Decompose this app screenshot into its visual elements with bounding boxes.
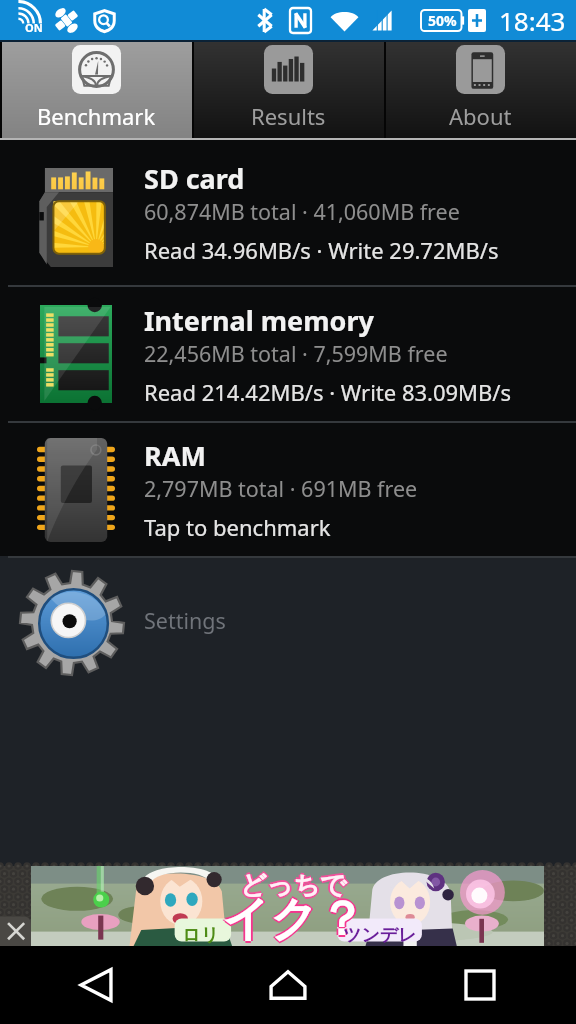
button[interactable]: Internal memory: [0, 287, 576, 421]
staticText: ツンデレ: [343, 924, 417, 947]
staticText: どっちで: [240, 869, 347, 902]
staticText: SD card: [144, 160, 245, 197]
staticText: Settings: [144, 606, 226, 635]
button[interactable]: RAM: [0, 423, 576, 556]
button[interactable]: Settings: [0, 558, 576, 688]
staticText: 50%: [428, 11, 457, 30]
button[interactable]: Results: [192, 42, 384, 140]
button[interactable]: Back: [0, 946, 192, 1024]
button[interactable]: SD card: [0, 140, 576, 285]
staticText: どっちで: [242, 869, 349, 902]
staticText: どっちで: [240, 871, 347, 904]
staticText: 60,874MB total · 41,060MB free: [144, 197, 460, 226]
staticText: イク？: [224, 890, 368, 949]
staticText: Results: [251, 101, 326, 131]
staticText: どっちで: [238, 869, 345, 902]
button[interactable]: Close ad: [0, 866, 31, 946]
staticText: About: [449, 101, 512, 131]
button[interactable]: Benchmark: [0, 42, 192, 140]
staticText: Internal memory: [144, 302, 374, 339]
button[interactable]: About: [384, 42, 576, 140]
staticText: ロリ: [182, 924, 219, 947]
staticText: 2,797MB total · 691MB free: [144, 474, 418, 503]
staticText: 22,456MB total · 7,599MB free: [144, 339, 448, 368]
staticText: RAM: [144, 437, 206, 474]
staticText: イク？: [220, 890, 364, 949]
button[interactable]: どっちで: [31, 866, 544, 946]
button[interactable]: Home: [192, 946, 384, 1024]
staticText: Read 214.42MB/s · Write 83.09MB/s: [144, 377, 512, 407]
staticText: イク？: [222, 890, 366, 949]
staticText: ON: [25, 20, 43, 35]
staticText: Read 34.96MB/s · Write 29.72MB/s: [144, 235, 499, 265]
staticText: 18:43: [499, 3, 566, 38]
staticText: イク？: [222, 892, 366, 951]
button[interactable]: Recent apps: [384, 946, 576, 1024]
staticText: どっちで: [240, 867, 347, 900]
staticText: Tap to benchmark: [144, 512, 331, 542]
staticText: イク？: [222, 888, 366, 947]
staticText: Benchmark: [37, 101, 156, 131]
